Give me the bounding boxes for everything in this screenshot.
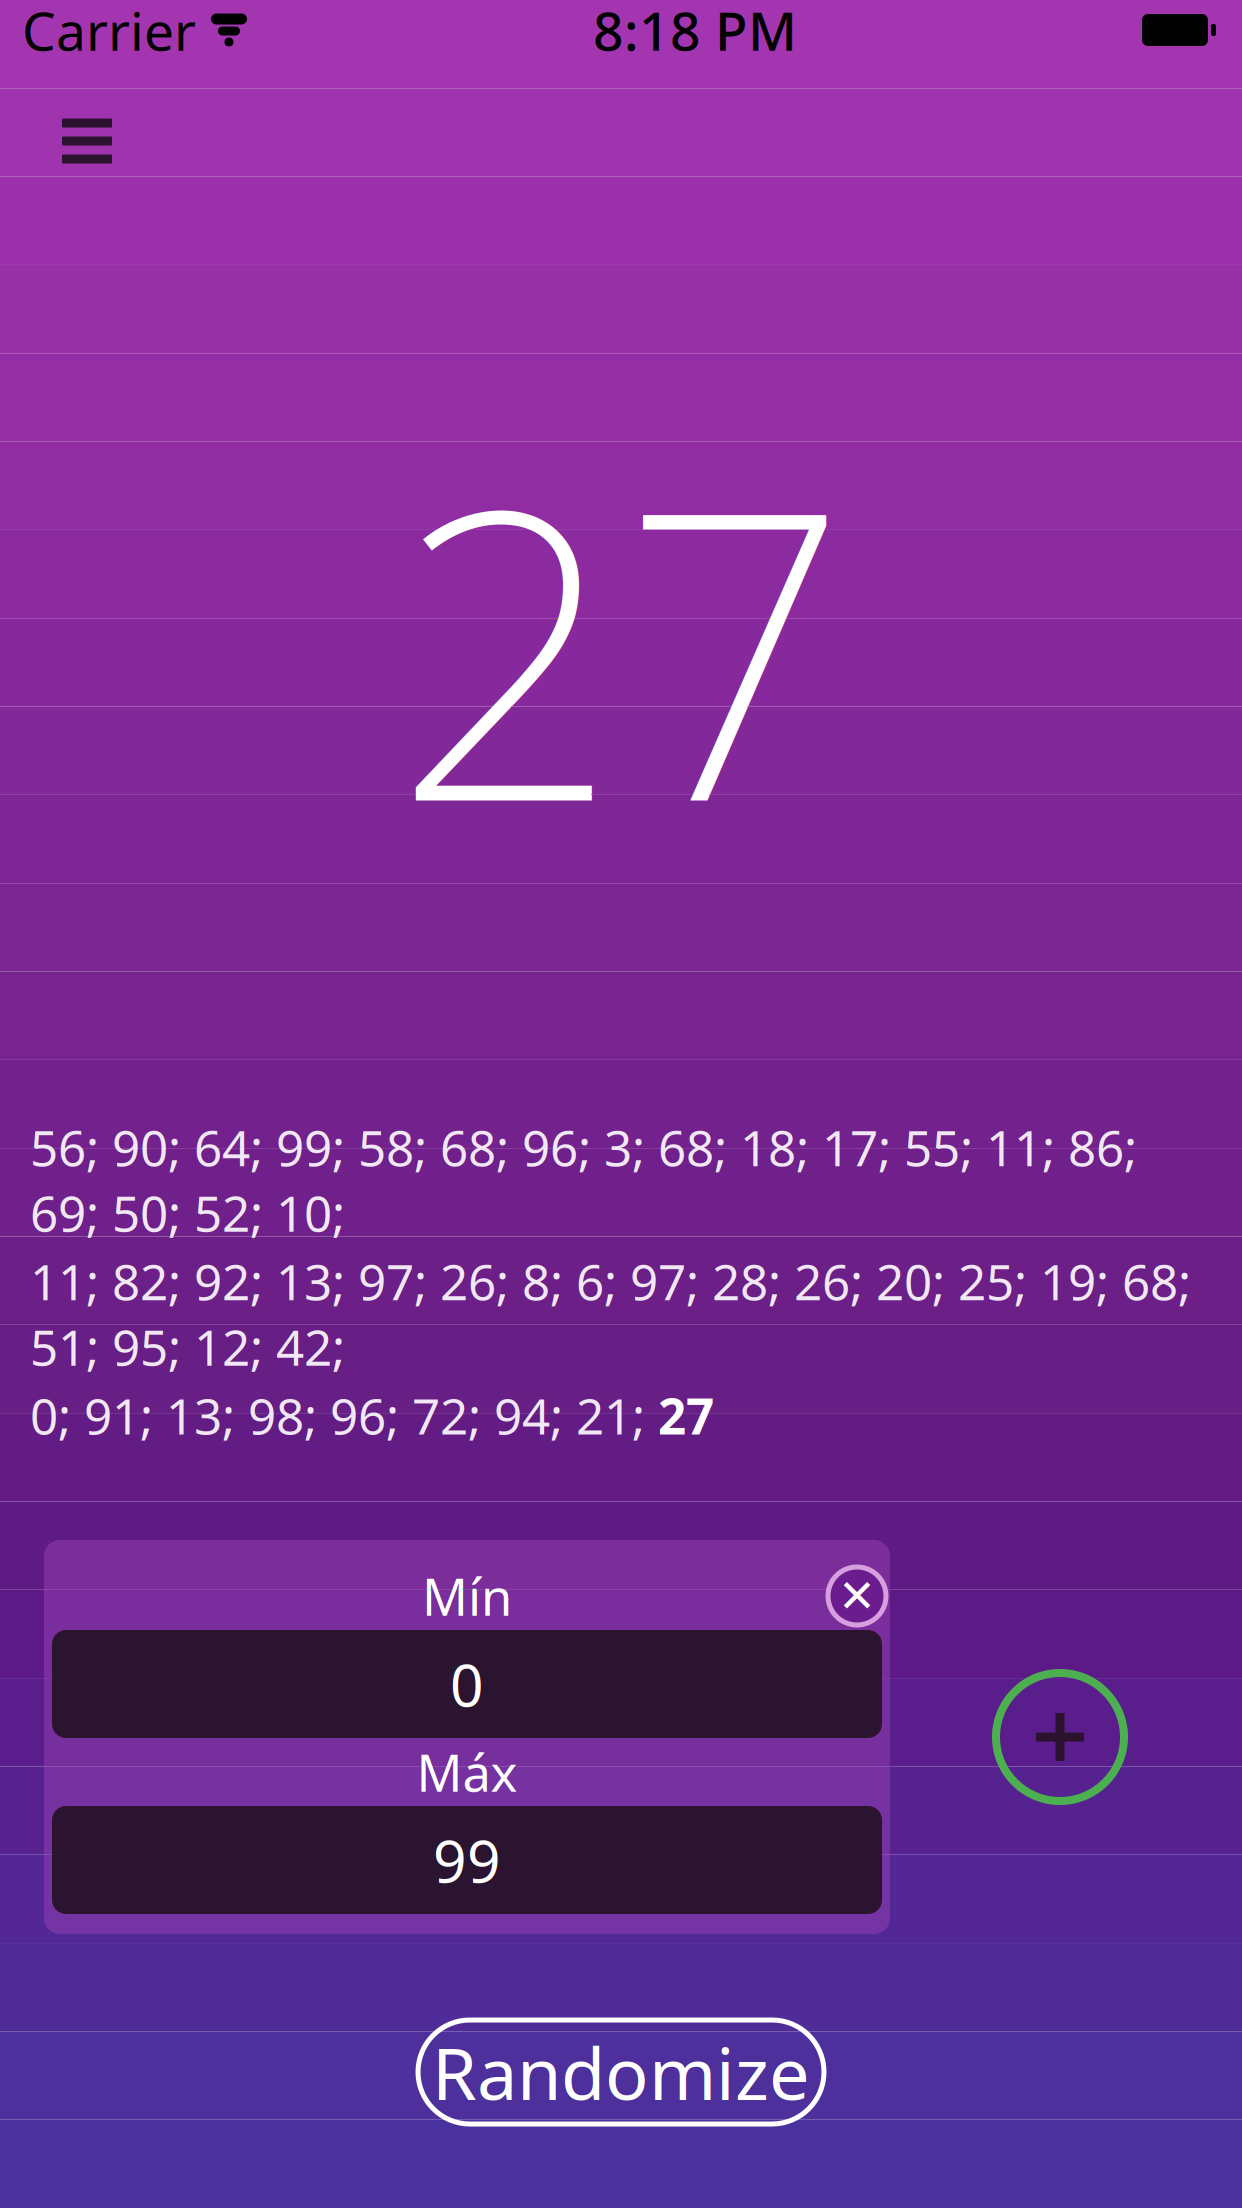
staticText: ✕: [838, 1570, 876, 1622]
button[interactable]: 99: [52, 1806, 882, 1914]
button[interactable]: Menu: [44, 106, 130, 176]
button[interactable]: Add: [990, 1667, 1130, 1807]
staticText: Mín: [422, 1562, 512, 1630]
staticText: 8:18 PM: [593, 0, 797, 65]
staticText: 11; 82; 92; 13; 97; 26; 8; 6; 97; 28; 26…: [30, 1248, 1191, 1379]
staticText: 99: [433, 1821, 501, 1899]
staticText: 0: [450, 1645, 484, 1723]
staticText: 27: [658, 1382, 714, 1448]
button[interactable]: Randomize: [418, 2020, 824, 2124]
staticText: 27: [393, 380, 849, 911]
staticText: Randomize: [432, 2024, 810, 2120]
staticText: Máx: [416, 1738, 517, 1806]
staticText: Carrier: [22, 0, 196, 65]
staticText: 0; 91; 13; 98; 96; 72; 94; 21;: [30, 1382, 658, 1448]
button[interactable]: Close: [824, 1563, 890, 1629]
button[interactable]: 0: [52, 1630, 882, 1738]
staticText: 56; 90; 64; 99; 58; 68; 96; 3; 68; 18; 1…: [30, 1114, 1137, 1245]
